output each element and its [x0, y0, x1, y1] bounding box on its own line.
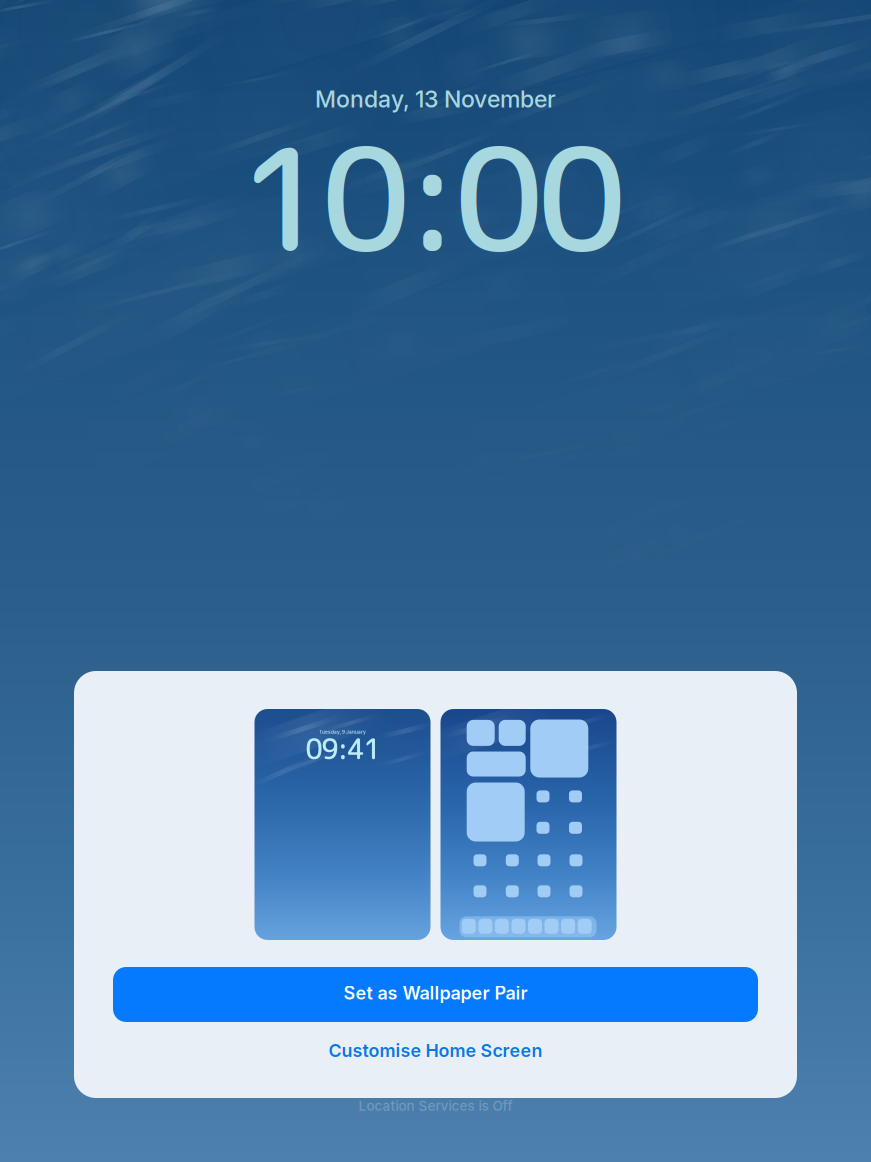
- button[interactable]: Customise Home Screen: [113, 1022, 758, 1079]
- button[interactable]: Tuesday, 9 January: [254, 709, 430, 940]
- button[interactable]: [440, 709, 616, 940]
- staticText: Monday, 13 November: [315, 85, 556, 113]
- staticText: Tuesday, 9 January: [319, 729, 366, 735]
- staticText: Customise Home Screen: [328, 1040, 542, 1061]
- staticText: Location Services is Off: [358, 1098, 512, 1114]
- staticText: Set as Wallpaper Pair: [343, 982, 527, 1004]
- button[interactable]: Set as Wallpaper Pair: [113, 967, 758, 1022]
- staticText: 09:41: [305, 730, 380, 768]
- staticText: 10:00: [238, 99, 626, 296]
